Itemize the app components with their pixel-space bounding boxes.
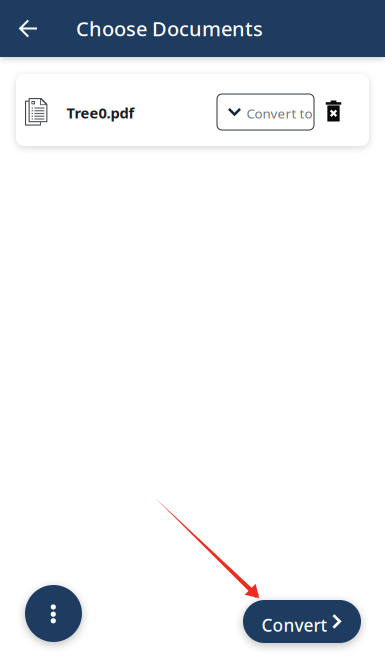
staticText: Convert — [261, 613, 327, 636]
button[interactable]: Back — [0, 0, 56, 57]
staticText: Choose Documents — [76, 15, 263, 42]
staticText: Convert to — [246, 104, 312, 122]
button[interactable]: More options — [25, 585, 82, 642]
staticText: Tree0.pdf — [66, 103, 134, 122]
button[interactable]: Convert to — [217, 94, 314, 130]
button[interactable]: Delete — [317, 91, 349, 131]
button[interactable]: Convert — [243, 600, 361, 643]
